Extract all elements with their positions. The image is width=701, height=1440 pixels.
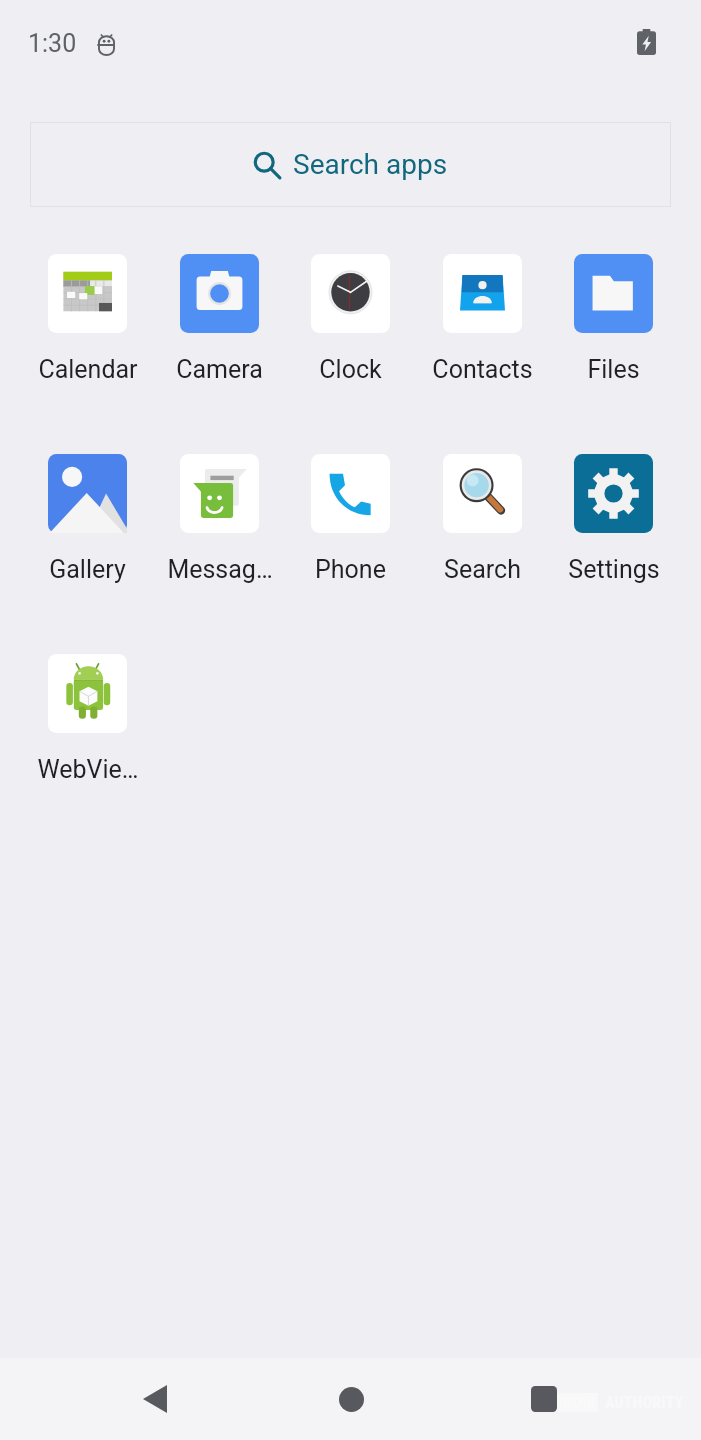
staticText: Settings [568, 555, 660, 584]
button[interactable]: Calendar [22, 254, 153, 385]
button[interactable]: Gallery [22, 454, 153, 585]
button[interactable]: Search apps [30, 122, 671, 207]
staticText: 1:30 [28, 29, 77, 58]
staticText: Contacts [432, 355, 533, 384]
button[interactable]: Recent apps [510, 1365, 578, 1433]
button[interactable]: Files [548, 254, 679, 385]
button[interactable]: Search [417, 454, 548, 585]
button[interactable]: WebVie… [22, 654, 153, 785]
button[interactable]: Messag… [154, 454, 285, 585]
staticText: Files [587, 355, 640, 384]
staticText: Camera [176, 355, 263, 384]
staticText: Clock [319, 355, 382, 384]
button[interactable]: Home [317, 1365, 385, 1433]
button[interactable]: Contacts [417, 254, 548, 385]
button[interactable]: Phone [285, 454, 416, 585]
staticText: Messag… [167, 555, 273, 584]
button[interactable]: Back [121, 1365, 189, 1433]
staticText: Search [444, 555, 521, 584]
button[interactable]: Clock [285, 254, 416, 385]
staticText: Phone [315, 555, 386, 584]
staticText: Search apps [293, 148, 448, 181]
staticText: Calendar [38, 355, 138, 384]
staticText: Gallery [49, 555, 126, 584]
button[interactable]: Camera [154, 254, 285, 385]
button[interactable]: Settings [548, 454, 679, 585]
staticText: WebVie… [37, 755, 139, 784]
staticText: ANDROID [535, 1393, 596, 1412]
